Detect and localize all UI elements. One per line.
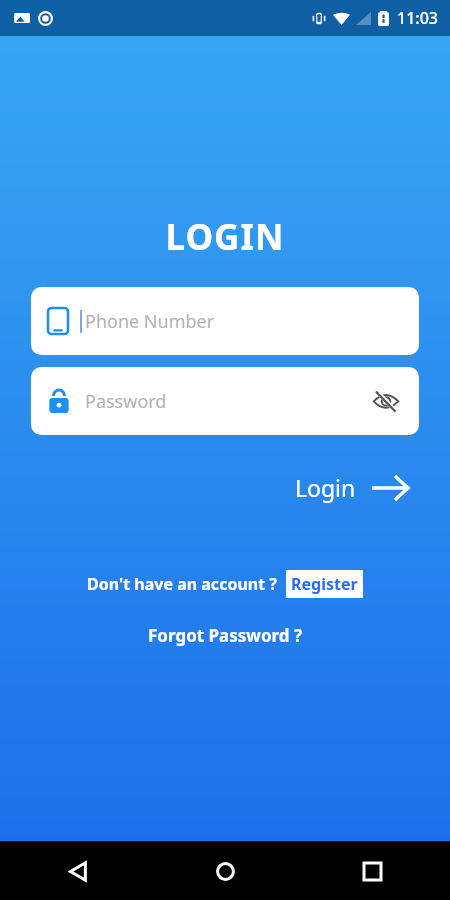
button[interactable]: Home bbox=[203, 849, 247, 893]
staticText: Register bbox=[291, 573, 358, 595]
button[interactable]: Show password bbox=[369, 384, 403, 418]
button[interactable]: Login bbox=[287, 466, 416, 509]
button[interactable]: Back bbox=[56, 849, 100, 893]
staticText: 11:03 bbox=[397, 7, 438, 29]
staticText: Login bbox=[295, 472, 356, 503]
staticText: Password bbox=[85, 389, 167, 414]
button[interactable]: Register bbox=[286, 570, 363, 598]
staticText: Forgot Password ? bbox=[148, 624, 303, 647]
staticText: Phone Number bbox=[85, 309, 215, 334]
staticText: LOGIN bbox=[0, 213, 450, 261]
button[interactable]: Phone Number bbox=[31, 287, 419, 355]
button[interactable]: Password bbox=[31, 367, 419, 435]
staticText: Don't have an account ? bbox=[87, 573, 277, 595]
button[interactable]: Forgot Password ? bbox=[138, 620, 313, 651]
button[interactable]: Recent apps bbox=[350, 849, 394, 893]
